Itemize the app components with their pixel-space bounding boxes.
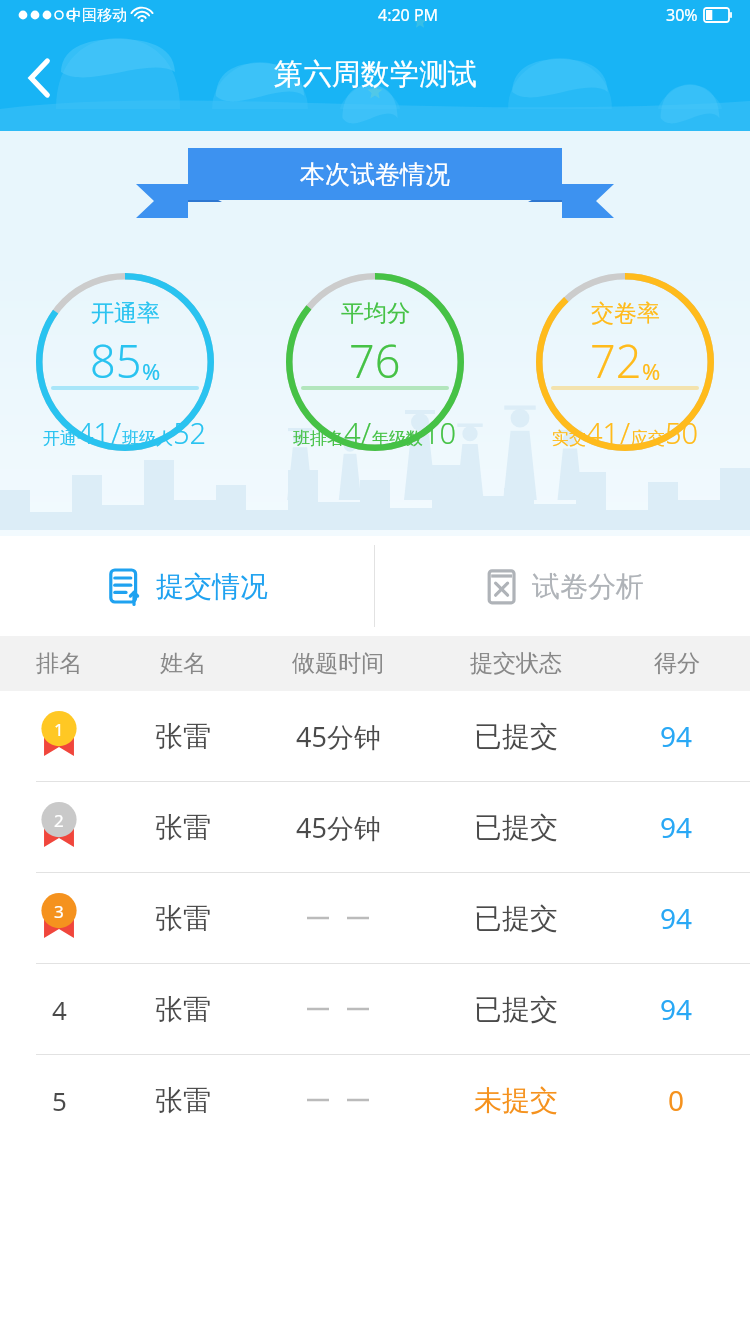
staticText: 提交情况 [156,569,268,604]
staticText: 提交状态 [470,649,562,678]
staticText: 94 [660,990,693,1028]
staticText: 交卷率 [591,299,660,328]
staticText: 班排名 [293,428,344,449]
staticText: / [111,413,122,452]
button[interactable]: 5 [0,1055,750,1145]
staticText: 10 [423,413,457,452]
staticText: 4:20 PM [378,4,439,26]
staticText: 41 [586,413,620,452]
staticText: 本次试卷情况 [300,159,450,190]
staticText: 张雷 [155,810,211,845]
staticText: 85 [90,330,142,391]
staticText: 试卷分析 [532,569,644,604]
staticText: 做题时间 [292,649,384,678]
staticText: 52 [173,413,207,452]
staticText: 张雷 [155,992,211,1027]
staticText: 第六周数学测试 [274,56,477,93]
staticText: % [142,356,161,386]
button[interactable]: 4 [0,964,750,1054]
staticText: 张雷 [155,1083,211,1118]
staticText: 开通率 [91,299,160,328]
staticText: 45分钟 [296,809,381,846]
staticText: 平均分 [341,299,410,328]
staticText: 2 [54,809,64,832]
staticText: 41 [77,413,111,452]
staticText: 4 [344,413,361,452]
button[interactable]: 3 [0,873,750,963]
staticText: 50 [665,413,699,452]
staticText: 94 [660,717,693,755]
staticText: 排名 [36,649,82,678]
staticText: 45分钟 [296,718,381,755]
staticText: 1 [54,718,64,741]
staticText: / [361,413,372,452]
staticText: 72 [590,330,642,391]
staticText: 班级人 [122,428,173,449]
staticText: 张雷 [155,901,211,936]
staticText: 已提交 [474,992,558,1027]
button[interactable]: Back [8,46,72,110]
button[interactable]: 2 [0,782,750,872]
button[interactable]: 1 [0,691,750,781]
staticText: 5 [52,1083,67,1118]
staticText: 实交 [552,428,586,449]
staticText: 94 [660,808,693,846]
button[interactable]: 试卷分析 [375,536,750,636]
staticText: 已提交 [474,810,558,845]
staticText: 30% [666,4,698,26]
staticText: 得分 [654,649,700,678]
staticText: 年级数 [372,428,423,449]
staticText: 0 [668,1081,685,1119]
staticText: 中国移动 [67,6,127,25]
staticText: 76 [349,330,401,391]
button[interactable]: 提交情况 [0,536,374,636]
staticText: 开通 [43,428,77,449]
staticText: % [642,356,661,386]
staticText: 应交 [631,428,665,449]
staticText: 已提交 [474,719,558,754]
staticText: 94 [660,899,693,937]
staticText: 未提交 [474,1083,558,1118]
staticText: 张雷 [155,719,211,754]
staticText: 已提交 [474,901,558,936]
staticText: 4 [52,992,67,1027]
staticText: 姓名 [160,649,206,678]
staticText: 3 [54,900,64,923]
staticText: / [620,413,631,452]
